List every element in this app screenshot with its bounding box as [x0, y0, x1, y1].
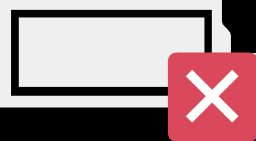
button[interactable]: Display not available [0, 0, 256, 141]
